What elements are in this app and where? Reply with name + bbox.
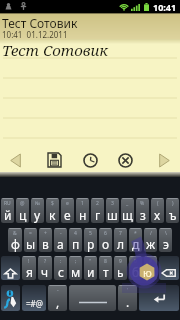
staticText: : <box>60 258 62 265</box>
staticText: " <box>89 258 92 265</box>
staticText: у <box>34 207 41 223</box>
staticText: RU <box>4 200 11 207</box>
button[interactable]: # <box>144 256 157 280</box>
staticText: = <box>29 230 32 237</box>
staticText: о <box>102 236 110 252</box>
staticText: б <box>132 264 140 280</box>
button[interactable]: Shift <box>1 256 20 280</box>
staticText: ч <box>41 264 49 280</box>
button[interactable]: 9 <box>114 256 127 280</box>
button[interactable]: Enter <box>139 285 179 311</box>
staticText: е <box>64 207 71 223</box>
staticText: _ <box>126 200 129 207</box>
button[interactable]: + <box>39 228 52 252</box>
button[interactable]: e <box>61 198 74 223</box>
button[interactable]: 1 <box>76 198 89 223</box>
button[interactable]: ' <box>118 285 137 311</box>
staticText: в <box>42 236 49 252</box>
staticText: ю <box>143 265 152 280</box>
staticText: с <box>58 264 64 280</box>
staticText: Тест Сотовик <box>2 40 109 60</box>
staticText: ц <box>19 207 27 223</box>
staticText: & <box>13 230 17 237</box>
staticText: ж <box>146 236 156 252</box>
button[interactable]: : <box>54 256 67 280</box>
staticText: ю <box>146 264 156 280</box>
button[interactable]: = <box>24 228 37 252</box>
staticText: / <box>150 230 152 237</box>
button[interactable]: 4 <box>69 228 82 252</box>
staticText: ъ <box>169 207 177 223</box>
button[interactable]: & <box>8 228 22 252</box>
staticText: # <box>149 258 153 265</box>
button[interactable]: Set reminder time <box>81 151 100 169</box>
button[interactable]: ? <box>38 256 52 280</box>
staticText: ) <box>172 200 174 207</box>
staticText: 10:41 01.12.2011 <box>2 29 68 40</box>
staticText: д <box>132 236 140 252</box>
staticText: и <box>87 264 95 280</box>
staticText: , <box>56 294 60 310</box>
button[interactable]: Backspace <box>159 256 179 280</box>
staticText: 2 <box>96 200 99 207</box>
staticText: п <box>72 236 80 252</box>
button[interactable]: ( <box>151 198 164 223</box>
staticText: - <box>60 230 62 237</box>
button[interactable]: - <box>54 228 67 252</box>
button[interactable]: Previous note <box>6 151 25 169</box>
staticText: Тест Сотовик <box>2 15 78 31</box>
button[interactable]: 7 <box>114 228 127 252</box>
staticText: 5 <box>89 230 92 237</box>
button[interactable]: ; <box>69 256 82 280</box>
button[interactable]: @ <box>16 198 29 223</box>
staticText: @ <box>20 200 25 207</box>
button[interactable]: \ <box>159 228 172 252</box>
staticText: 1 <box>81 200 84 207</box>
button[interactable]: 0 <box>129 256 142 280</box>
staticText: 8 <box>104 258 107 265</box>
staticText: н <box>79 207 87 223</box>
staticText: - <box>57 287 59 294</box>
button[interactable]: 2 <box>91 198 104 223</box>
button[interactable]: Input method <box>1 285 20 311</box>
staticText: ш <box>107 207 118 223</box>
button[interactable]: - <box>48 285 67 311</box>
button[interactable]: 5 <box>84 228 97 252</box>
button[interactable]: Cancel <box>116 151 135 169</box>
button[interactable]: * <box>129 228 142 252</box>
button[interactable]: Next note <box>154 151 173 169</box>
button[interactable]: 8 <box>99 256 112 280</box>
button[interactable]: 3 <box>106 198 119 223</box>
button[interactable]: _ <box>121 198 134 223</box>
staticText: ? <box>44 258 47 265</box>
button[interactable]: Symbols <box>22 285 46 311</box>
button[interactable]: Save <box>45 151 64 169</box>
button[interactable]: ! <box>22 256 36 280</box>
staticText: № <box>35 200 41 207</box>
button[interactable]: ) <box>166 198 179 223</box>
staticText: щ <box>122 207 133 223</box>
staticText: $ <box>51 200 54 207</box>
button[interactable]: $ <box>46 198 59 223</box>
staticText: ь <box>117 264 124 280</box>
button[interactable]: " <box>84 256 97 280</box>
staticText: ! <box>28 258 30 265</box>
staticText: ; <box>75 258 77 265</box>
staticText: й <box>4 207 12 223</box>
staticText: з <box>140 207 146 223</box>
staticText: 4 <box>74 230 77 237</box>
staticText: % <box>140 200 145 207</box>
staticText: 6 <box>104 230 107 237</box>
button[interactable]: № <box>31 198 44 223</box>
button[interactable]: % <box>136 198 149 223</box>
staticText: х <box>154 207 161 223</box>
staticText: г <box>95 207 101 223</box>
staticText: * <box>134 230 137 237</box>
button[interactable]: RU <box>1 198 14 223</box>
staticText: . <box>126 294 130 310</box>
staticText: 0 <box>134 258 137 265</box>
button[interactable]: 6 <box>99 228 112 252</box>
button[interactable]: / <box>144 228 157 252</box>
staticText: ы <box>26 236 36 252</box>
button[interactable]: Space <box>69 285 116 311</box>
